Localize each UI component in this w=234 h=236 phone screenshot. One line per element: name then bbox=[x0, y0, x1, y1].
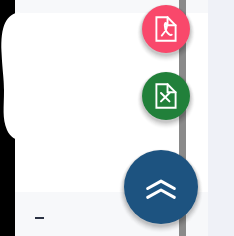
button[interactable]: Export as Excel spreadsheet bbox=[136, 66, 196, 126]
button[interactable]: Export as PDF bbox=[136, 0, 196, 59]
button[interactable]: Scroll to top bbox=[119, 145, 203, 229]
